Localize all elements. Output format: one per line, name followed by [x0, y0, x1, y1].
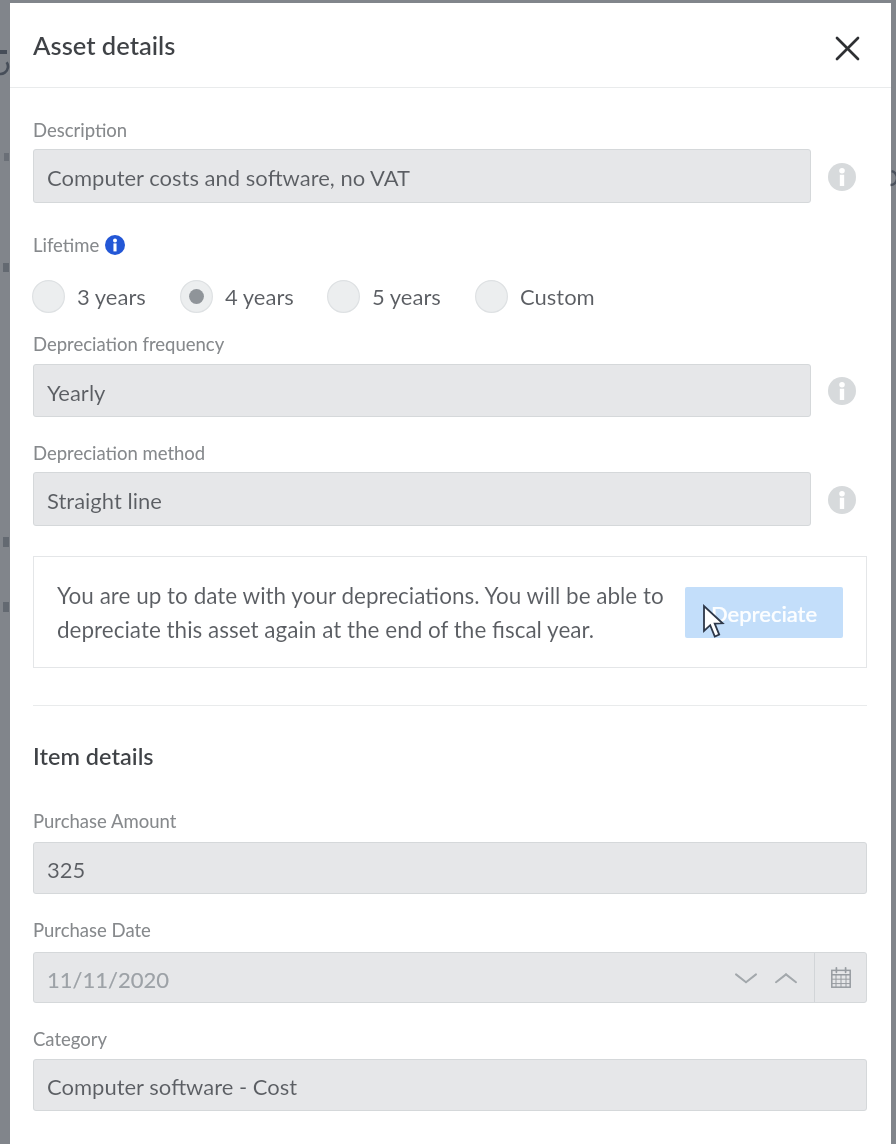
button[interactable]: Method info: [828, 486, 856, 514]
staticText: Custom: [520, 283, 595, 309]
staticText: Description: [33, 119, 128, 141]
staticText: Depreciate: [711, 600, 818, 626]
staticText: Yearly: [47, 379, 106, 405]
staticText: Computer software - Cost: [47, 1073, 298, 1099]
staticText: Depreciation method: [33, 442, 206, 464]
staticText: 4 years: [225, 283, 294, 309]
staticText: Category: [33, 1028, 108, 1050]
button[interactable]: Yearly: [33, 364, 811, 417]
staticText: Item details: [33, 742, 154, 770]
button[interactable]: Close: [825, 26, 869, 70]
button[interactable]: Custom: [475, 279, 595, 313]
button[interactable]: Straight line: [33, 472, 811, 526]
button[interactable]: Computer software - Cost: [33, 1059, 867, 1111]
button[interactable]: Computer costs and software, no VAT: [33, 149, 811, 203]
staticText: You are up to date with your depreciatio…: [57, 582, 664, 642]
staticText: Computer costs and software, no VAT: [47, 164, 411, 190]
button[interactable]: Open calendar: [815, 952, 867, 1003]
staticText: Asset details: [33, 30, 176, 61]
staticText: 3 years: [77, 283, 146, 309]
button[interactable]: 325: [33, 842, 867, 894]
button[interactable]: Depreciate: [685, 587, 843, 638]
staticText: Purchase Amount: [33, 810, 177, 832]
button[interactable]: 4 years: [180, 279, 294, 313]
button[interactable]: 11/11/2020: [33, 952, 867, 1003]
button[interactable]: Frequency info: [828, 377, 856, 405]
button[interactable]: Next date: [766, 952, 806, 1003]
button[interactable]: Lifetime info: [105, 235, 125, 255]
staticText: Straight line: [47, 487, 162, 513]
staticText: Lifetime: [33, 234, 100, 256]
staticText: 5 years: [372, 283, 441, 309]
staticText: Purchase Date: [33, 919, 151, 941]
staticText: Depreciation frequency: [33, 333, 225, 355]
button[interactable]: Previous date: [726, 952, 766, 1003]
button[interactable]: 5 years: [327, 279, 441, 313]
button[interactable]: 3 years: [32, 279, 146, 313]
staticText: 11/11/2020: [47, 966, 169, 992]
staticText: 325: [47, 856, 86, 882]
button[interactable]: Description info: [828, 163, 856, 191]
